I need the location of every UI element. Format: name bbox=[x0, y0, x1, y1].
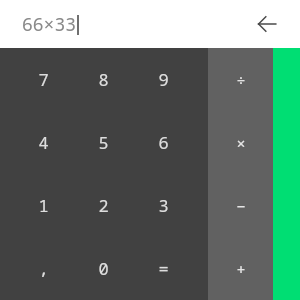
button[interactable]: 1 bbox=[14, 174, 73, 237]
button[interactable]: 4 bbox=[14, 111, 73, 174]
staticText: × bbox=[236, 133, 246, 153]
button[interactable]: 3 bbox=[133, 174, 193, 237]
button[interactable]: 66×33 bbox=[22, 12, 79, 37]
staticText: + bbox=[236, 259, 246, 279]
staticText: 0 bbox=[98, 257, 109, 280]
staticText: 5 bbox=[98, 131, 109, 154]
staticText: 3 bbox=[158, 194, 169, 217]
button[interactable]: 5 bbox=[73, 111, 133, 174]
staticText: 9 bbox=[158, 68, 169, 91]
button[interactable]: Multiply bbox=[208, 111, 273, 174]
button[interactable]: 9 bbox=[133, 48, 193, 111]
staticText: , bbox=[38, 257, 49, 280]
button[interactable]: Divide bbox=[208, 48, 273, 111]
staticText: = bbox=[158, 257, 169, 280]
staticText: 6 bbox=[158, 131, 169, 154]
button[interactable]: 0 bbox=[73, 237, 133, 300]
staticText: 4 bbox=[38, 131, 49, 154]
button[interactable]: 2 bbox=[73, 174, 133, 237]
button[interactable]: Add bbox=[208, 237, 273, 300]
button[interactable]: 6 bbox=[133, 111, 193, 174]
staticText: − bbox=[236, 196, 246, 216]
staticText: 7 bbox=[38, 68, 49, 91]
staticText: ÷ bbox=[236, 70, 246, 90]
button[interactable]: Subtract bbox=[208, 174, 273, 237]
staticText: 2 bbox=[98, 194, 109, 217]
button[interactable]: = bbox=[133, 237, 193, 300]
button[interactable]: Back bbox=[250, 7, 284, 41]
button[interactable]: , bbox=[14, 237, 73, 300]
staticText: 8 bbox=[98, 68, 109, 91]
staticText: 1 bbox=[38, 194, 49, 217]
staticText: 66×33 bbox=[22, 12, 76, 37]
button[interactable]: 8 bbox=[73, 48, 133, 111]
button[interactable]: 7 bbox=[14, 48, 73, 111]
